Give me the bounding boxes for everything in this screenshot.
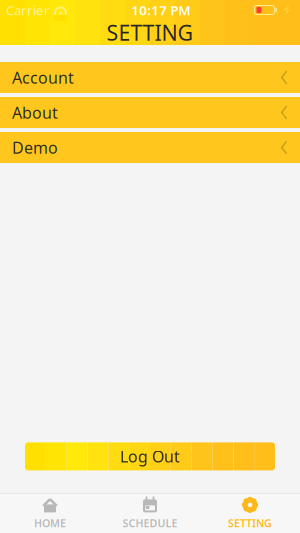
staticText: 10:17 PM (131, 1, 190, 19)
button[interactable]: SETTING (200, 493, 300, 533)
staticText: Log Out (120, 446, 180, 467)
button[interactable]: SCHEDULE (100, 493, 200, 533)
staticText: SETTING (106, 18, 193, 47)
staticText: SCHEDULE (122, 516, 177, 530)
button[interactable]: Demo (0, 132, 300, 163)
button[interactable]: Account (0, 62, 300, 93)
staticText: ⚡ (281, 4, 294, 16)
button[interactable]: Log Out (0, 442, 300, 470)
staticText: Carrier (6, 1, 50, 19)
staticText: HOME (34, 516, 66, 530)
button[interactable]: HOME (0, 493, 100, 533)
staticText: Demo (12, 137, 58, 158)
staticText: About (12, 102, 58, 123)
staticText: Account (12, 67, 74, 88)
button[interactable]: About (0, 97, 300, 128)
staticText: SETTING (228, 516, 272, 530)
